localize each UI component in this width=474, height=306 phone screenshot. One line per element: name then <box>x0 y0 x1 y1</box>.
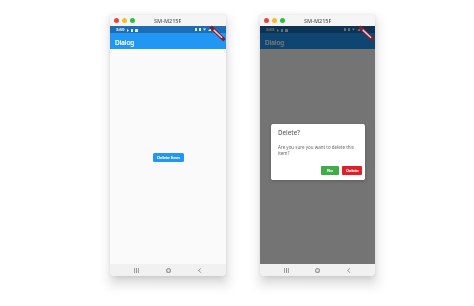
staticText: Delete Item <box>157 155 181 161</box>
button[interactable]: Home <box>312 265 323 276</box>
button[interactable]: Close <box>264 18 269 23</box>
staticText: Delete? <box>278 128 300 136</box>
staticText: 3:53 <box>266 27 275 33</box>
staticText: SM-M215F <box>154 17 182 24</box>
staticText: Delete <box>346 168 359 174</box>
button[interactable]: Minimize <box>272 18 277 23</box>
button[interactable]: Home <box>163 265 174 276</box>
staticText: Dialog <box>265 38 285 47</box>
button[interactable]: Maximize <box>280 18 285 23</box>
staticText: Are you sure you want to delete this ite… <box>278 144 358 156</box>
staticText: 3:50 <box>116 27 125 33</box>
button[interactable]: Delete <box>342 166 362 175</box>
staticText: Dialog <box>115 38 135 47</box>
button[interactable]: Minimize <box>122 18 127 23</box>
button[interactable]: Recents <box>281 265 292 276</box>
button[interactable]: Back <box>194 265 205 276</box>
button[interactable]: No <box>321 166 339 175</box>
staticText: SM-M215F <box>304 17 332 24</box>
staticText: No <box>327 168 333 174</box>
button[interactable]: Delete Item <box>153 153 184 162</box>
button[interactable]: Close <box>114 18 119 23</box>
button[interactable]: Recents <box>131 265 142 276</box>
button[interactable]: Back <box>343 265 354 276</box>
button[interactable]: Maximize <box>130 18 135 23</box>
